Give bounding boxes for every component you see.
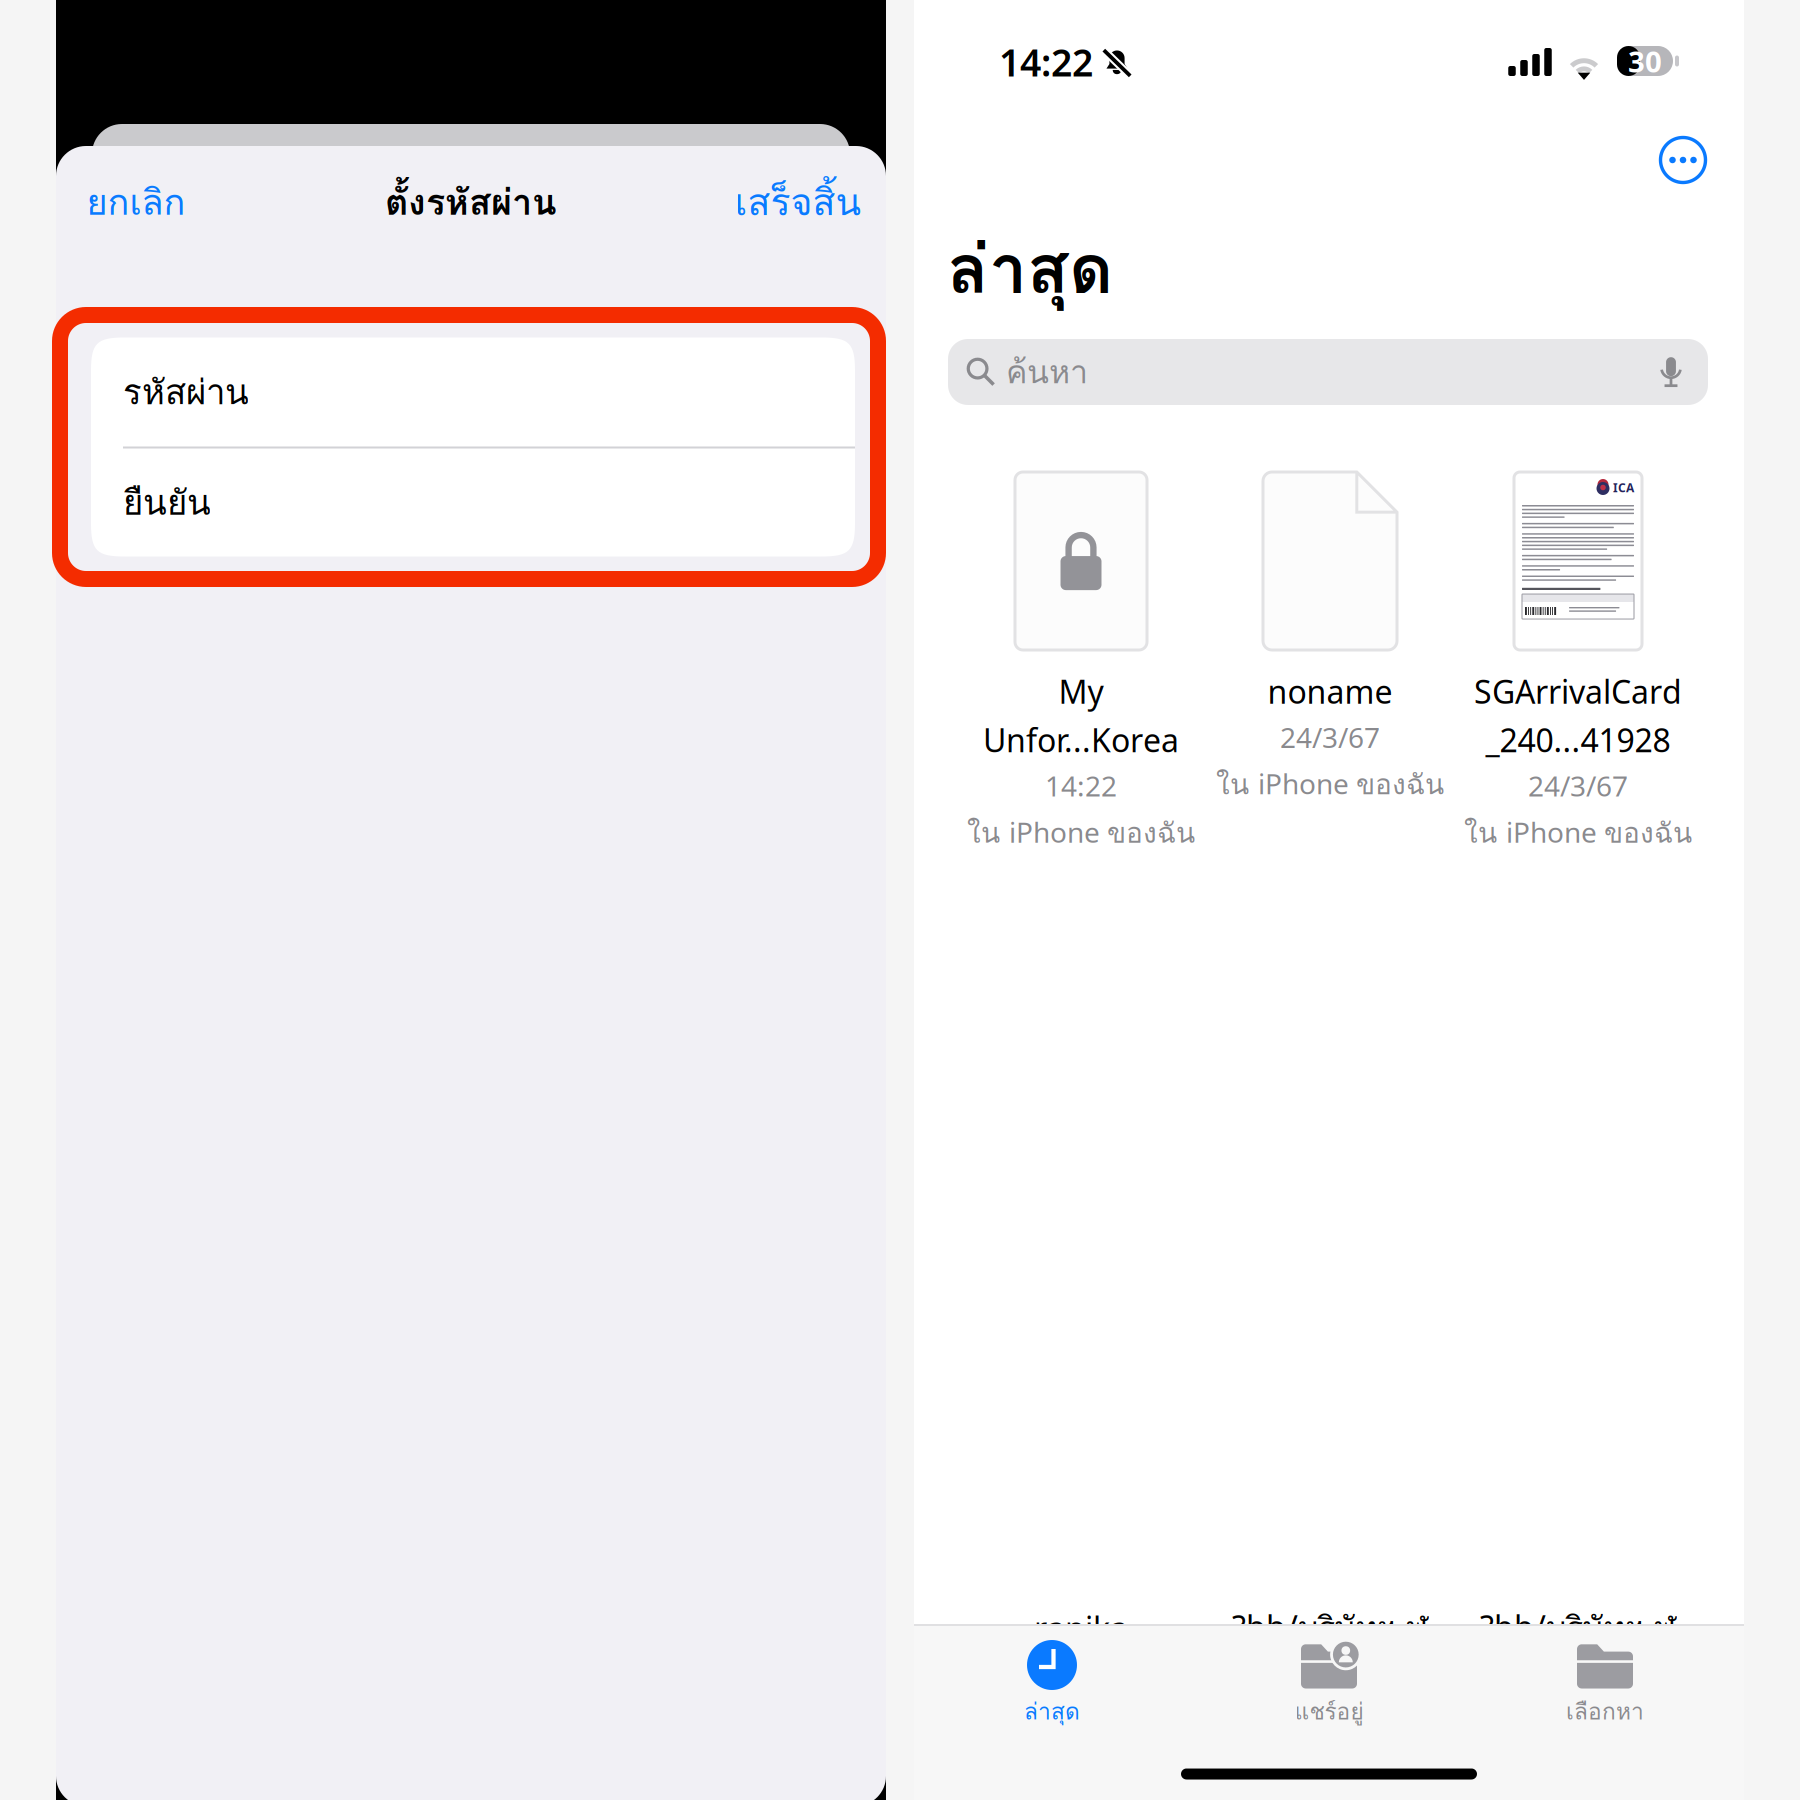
staticText: เสร็จสิ้น — [734, 173, 861, 231]
staticText: 24/3/67 — [1528, 767, 1628, 804]
staticText: _240...41928 — [1485, 718, 1670, 761]
button[interactable]: More — [1644, 121, 1722, 199]
staticText: 14:22 — [999, 37, 1093, 87]
staticText: 24/3/67 — [1280, 718, 1380, 756]
staticText: ล่าสุด — [947, 216, 1113, 322]
staticText: ใน iPhone ของฉัน — [967, 811, 1195, 855]
button[interactable]: noname — [1210, 470, 1450, 890]
staticText: My — [1058, 670, 1103, 712]
staticText: noname — [1267, 670, 1392, 712]
staticText: รหัสผ่าน — [123, 365, 249, 419]
staticText: เลือกหา — [1566, 1694, 1644, 1729]
button[interactable]: ยืนยัน — [91, 448, 855, 556]
staticText: ranika — [1034, 1607, 1128, 1649]
staticText: ตั้งรหัสผ่าน — [385, 174, 557, 230]
button[interactable]: รหัสผ่าน — [91, 337, 855, 446]
staticText: 14:22 — [1045, 767, 1117, 804]
staticText: ล่าสุด — [1024, 1694, 1080, 1729]
staticText: ICA — [1613, 479, 1634, 495]
staticText: ค้นหา — [1006, 347, 1088, 397]
staticText: ?bb/บริษัทฯ ฬ — [1480, 1603, 1676, 1653]
button[interactable]: My — [961, 470, 1201, 890]
button[interactable]: ยกเลิก — [50, 158, 222, 246]
staticText: SGArrivalCard — [1474, 670, 1682, 712]
staticText: Unfor...Korea — [983, 718, 1179, 761]
staticText: ใน iPhone ของฉัน — [1464, 811, 1692, 855]
staticText: ใน iPhone ของฉัน — [1216, 763, 1444, 806]
button[interactable]: แชร์อยู่ — [1199, 1638, 1459, 1778]
staticText: 30 — [1628, 41, 1662, 80]
staticText: ยืนยัน — [123, 476, 211, 529]
button[interactable]: ค้นหา — [948, 339, 1708, 405]
button[interactable]: ICA — [1458, 470, 1698, 890]
button[interactable]: ล่าสุด — [922, 1638, 1182, 1778]
staticText: แชร์อยู่ — [1294, 1694, 1363, 1729]
staticText: ยกเลิก — [86, 174, 185, 230]
staticText: ?bb/บริษัทฯ ฬ — [1232, 1603, 1428, 1653]
button[interactable]: เลือกหา — [1475, 1638, 1735, 1778]
button[interactable]: เสร็จสิ้น — [712, 158, 884, 246]
